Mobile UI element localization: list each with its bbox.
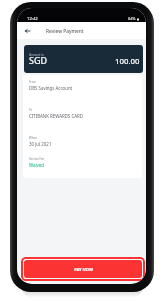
staticText: 64% [128,16,136,21]
staticText: 12:42 [27,16,38,22]
button[interactable]: Amount in [24,45,143,73]
staticText: Service Fee [29,157,45,161]
button[interactable]: Back [17,22,37,39]
staticText: CITIBANK REWARDS CARD [29,113,83,119]
staticText: DBS Savings Account [29,85,73,91]
staticText: Review Payment [46,28,84,35]
staticText: PAY NOW [74,267,93,272]
staticText: Waived [29,162,44,168]
staticText: SGD [29,54,48,66]
button[interactable]: PAY NOW [24,260,142,278]
staticText: When [29,136,37,140]
staticText: To [29,108,33,112]
staticText: 30 Jul 2021 [29,141,52,147]
staticText: 100.00 [115,56,140,67]
staticText: From [29,80,37,84]
staticText: Amount in [29,53,44,57]
